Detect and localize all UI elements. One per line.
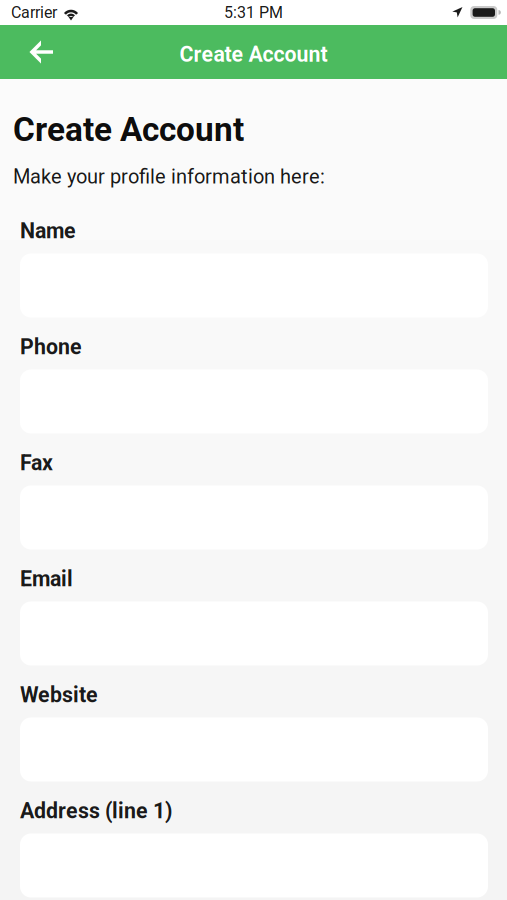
staticText: Address (line 1): [20, 798, 172, 823]
staticText: Phone: [20, 334, 82, 359]
staticText: Fax: [20, 450, 53, 475]
staticText: Website: [20, 682, 98, 707]
staticText: 5:31 PM: [224, 3, 283, 22]
staticText: Create Account: [13, 110, 244, 149]
staticText: Email: [20, 566, 73, 591]
button[interactable]: Back: [0, 25, 67, 79]
staticText: Create Account: [179, 42, 327, 67]
staticText: Name: [20, 218, 76, 243]
staticText: Carrier: [11, 3, 57, 22]
staticText: Make your profile information here:: [13, 165, 325, 188]
